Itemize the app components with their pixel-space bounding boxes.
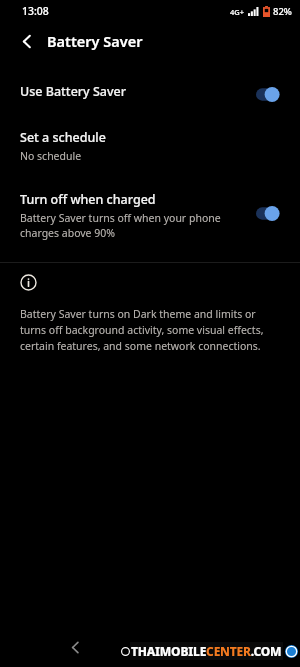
other: Information (20, 274, 37, 291)
staticText: 4G+ (230, 7, 245, 17)
button[interactable]: Use Battery Saver (0, 73, 300, 113)
button[interactable]: Toggle Turn off when charged (252, 203, 286, 223)
staticText: No schedule (20, 149, 82, 163)
staticText: Battery Saver turns on Dark theme and li… (20, 307, 278, 353)
button[interactable]: Set a schedule (0, 119, 300, 173)
button[interactable]: Turn off when charged (0, 181, 300, 250)
staticText: Battery Saver (47, 31, 143, 51)
staticText: Use Battery Saver (20, 83, 127, 100)
staticText: 82% (273, 5, 292, 18)
staticText: Battery Saver turns off when your phone … (20, 211, 236, 240)
staticText: 13:08 (22, 4, 49, 18)
staticText: Turn off when charged (20, 191, 156, 208)
staticText: Set a schedule (20, 129, 106, 146)
button[interactable]: Back (12, 26, 42, 56)
button[interactable]: Back (58, 630, 92, 664)
button[interactable]: Toggle Use Battery Saver (252, 84, 286, 104)
staticText: THAIMOBILECENTER.COM (131, 643, 282, 659)
